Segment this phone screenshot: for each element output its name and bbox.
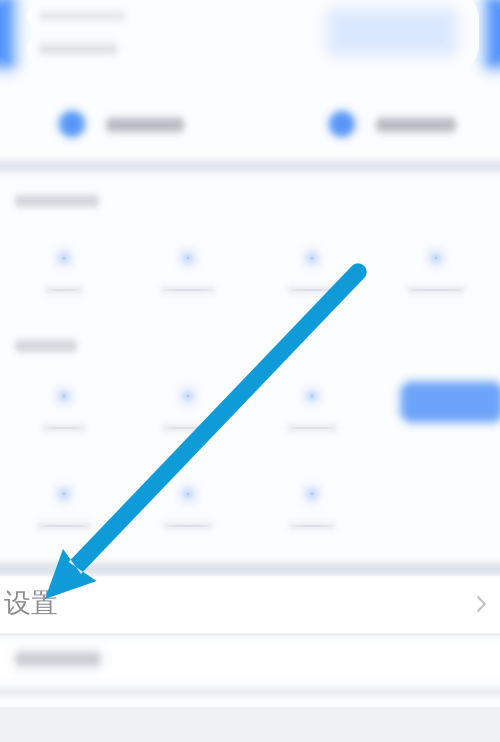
button[interactable] xyxy=(0,0,500,742)
button[interactable] xyxy=(0,0,500,742)
button[interactable] xyxy=(0,0,500,742)
button[interactable] xyxy=(0,0,500,742)
button[interactable] xyxy=(0,0,500,742)
button[interactable] xyxy=(0,0,500,742)
staticText: 设置 xyxy=(4,587,58,619)
button[interactable] xyxy=(0,0,500,742)
button[interactable] xyxy=(0,0,500,742)
button[interactable]: 设置 xyxy=(0,0,500,742)
button[interactable] xyxy=(0,0,500,742)
button[interactable] xyxy=(0,0,500,742)
button[interactable] xyxy=(0,0,500,742)
button[interactable] xyxy=(0,0,500,742)
button[interactable] xyxy=(0,0,500,742)
